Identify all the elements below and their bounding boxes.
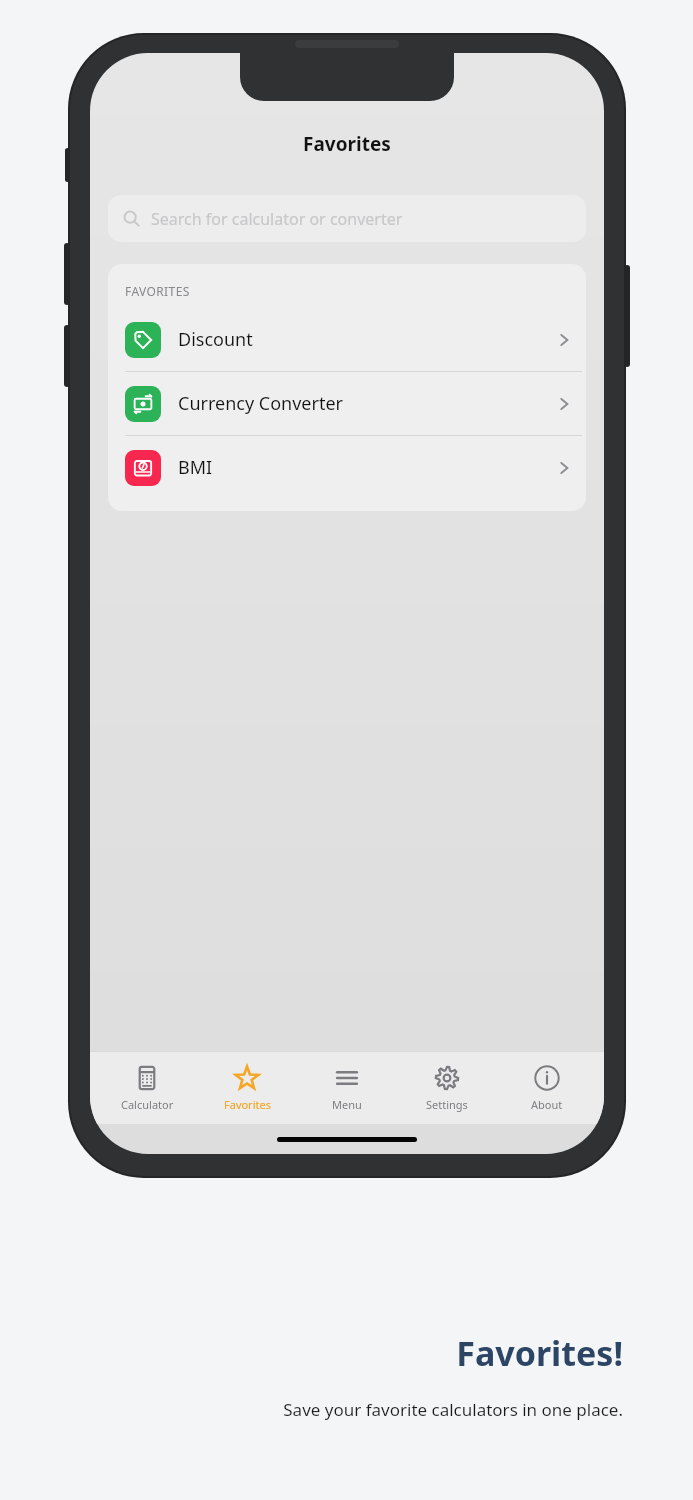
staticText: Menu — [332, 1097, 362, 1112]
button[interactable]: Search for calculator or converter — [108, 195, 586, 242]
staticText: Settings — [426, 1097, 468, 1112]
staticText: Calculator — [121, 1097, 174, 1112]
staticText: Currency Converter — [178, 391, 560, 416]
button[interactable]: Calculator — [104, 1061, 190, 1116]
button[interactable]: Menu — [304, 1061, 390, 1116]
button[interactable]: Settings — [404, 1061, 490, 1116]
button[interactable]: Favorites — [204, 1061, 290, 1116]
staticText: Favorites! — [456, 1330, 623, 1376]
staticText: Discount — [178, 327, 560, 352]
staticText: BMI — [178, 455, 560, 480]
staticText: About — [531, 1097, 563, 1112]
staticText: Search for calculator or converter — [151, 208, 403, 230]
staticText: Save your favorite calculators in one pl… — [283, 1398, 623, 1421]
button[interactable]: About — [504, 1061, 590, 1116]
button[interactable]: BMI — [108, 436, 586, 499]
button[interactable]: Discount — [108, 308, 586, 372]
staticText: Favorites — [303, 131, 391, 157]
staticText: Favorites — [224, 1097, 271, 1112]
staticText: FAVORITES — [125, 283, 190, 299]
button[interactable]: Currency Converter — [108, 372, 586, 436]
